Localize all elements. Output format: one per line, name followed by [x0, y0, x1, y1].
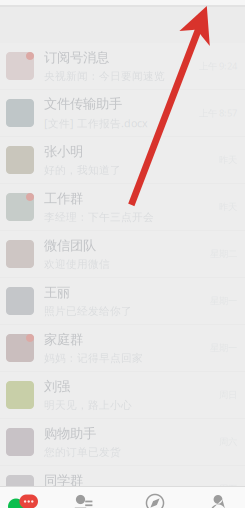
staticText: 妈妈：记得早点回家 — [44, 352, 143, 365]
staticText: 刘强 — [44, 378, 70, 395]
button[interactable]: 工作群 — [0, 184, 245, 231]
staticText: 微信团队 — [44, 237, 96, 254]
button[interactable]: 家庭群 — [0, 325, 245, 372]
staticText: 同学群 — [44, 472, 83, 489]
button[interactable]: 发现 — [122, 486, 184, 508]
button[interactable]: 购物助手 — [0, 419, 245, 466]
staticText: 明天见，路上小心 — [44, 399, 132, 412]
button[interactable]: 微信团队 — [0, 231, 245, 278]
staticText: 家庭群 — [44, 331, 83, 348]
button[interactable]: 同学群 — [0, 466, 245, 486]
button[interactable]: 通讯录 — [61, 486, 122, 508]
button[interactable]: 刘强 — [0, 372, 245, 419]
staticText: 订阅号消息 — [44, 49, 109, 66]
staticText: 央视新闻：今日要闻速览 — [44, 70, 165, 83]
button[interactable]: 订阅号消息 — [0, 43, 245, 90]
button[interactable]: 我 — [184, 486, 245, 508]
button[interactable]: 微信 — [0, 486, 61, 508]
staticText: 工作群 — [44, 190, 83, 207]
staticText: 王丽 — [44, 284, 70, 301]
staticText: 周末聚会地点确定了 — [44, 493, 143, 506]
staticText: 周五 — [219, 483, 237, 495]
staticText: 好的，我知道了 — [44, 164, 121, 177]
button[interactable]: 王丽 — [0, 278, 245, 325]
staticText: 文件传输助手 — [44, 96, 122, 112]
staticText: 欢迎使用微信 — [44, 258, 110, 271]
staticText: [文件] 工作报告.docx — [44, 116, 148, 130]
staticText: 购物助手 — [44, 425, 96, 442]
button[interactable]: 张小明 — [0, 137, 245, 184]
staticText: 您的订单已发货 — [44, 446, 121, 459]
staticText: 李经理：下午三点开会 — [44, 211, 154, 224]
staticText: 照片已经发给你了 — [44, 305, 132, 318]
button[interactable]: 文件传输助手 — [0, 90, 245, 137]
staticText: 张小明 — [44, 143, 83, 160]
